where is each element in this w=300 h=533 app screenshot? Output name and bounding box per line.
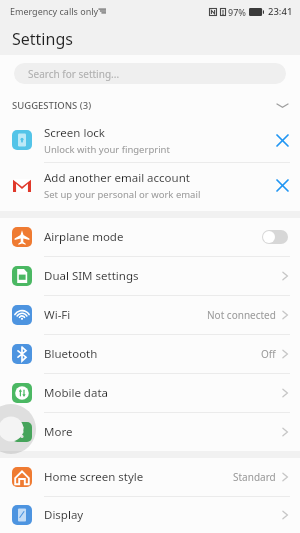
staticText: Not connected (207, 308, 276, 322)
staticText: Wi-Fi (44, 307, 207, 323)
staticText: SUGGESTIONS (3) (12, 99, 92, 112)
staticText: 97% (228, 6, 246, 18)
staticText: Home screen style (44, 469, 233, 485)
button[interactable]: Screen lock (0, 118, 300, 162)
button[interactable]: Mobile data (0, 374, 300, 412)
staticText: Settings (12, 28, 73, 50)
button[interactable]: Display (0, 497, 300, 533)
button[interactable]: Dual SIM settings (0, 257, 300, 295)
staticText: More (44, 424, 282, 440)
staticText: Set up your personal or work email (44, 188, 201, 201)
button[interactable]: Search for setting... (14, 63, 286, 84)
button[interactable]: More (0, 413, 300, 451)
staticText: Search for setting... (28, 67, 120, 81)
staticText: Mobile data (44, 385, 282, 401)
staticText: Display (44, 507, 282, 523)
staticText: Standard (233, 470, 276, 484)
button[interactable]: Dismiss Screen lock (264, 118, 300, 162)
staticText: Add another email account (44, 170, 190, 186)
staticText: Dual SIM settings (44, 268, 282, 284)
button[interactable]: Dismiss Add another email account (264, 163, 300, 207)
staticText: Bluetooth (44, 346, 261, 362)
staticText: Emergency calls only (10, 5, 99, 17)
button[interactable]: Bluetooth (0, 335, 300, 373)
button[interactable]: Add another email account (0, 163, 300, 207)
button[interactable]: Airplane mode toggle (262, 230, 288, 244)
button[interactable]: Airplane mode (0, 218, 300, 256)
button[interactable]: Home screen style (0, 458, 300, 496)
staticText: Screen lock (44, 125, 106, 141)
staticText: Airplane mode (44, 229, 262, 245)
staticText: Off (261, 347, 276, 361)
staticText: Unlock with your fingerprint (44, 143, 170, 156)
button[interactable]: SUGGESTIONS (3) (0, 92, 300, 118)
button[interactable]: Wi-Fi (0, 296, 300, 334)
staticText: 23:41 (268, 5, 293, 18)
